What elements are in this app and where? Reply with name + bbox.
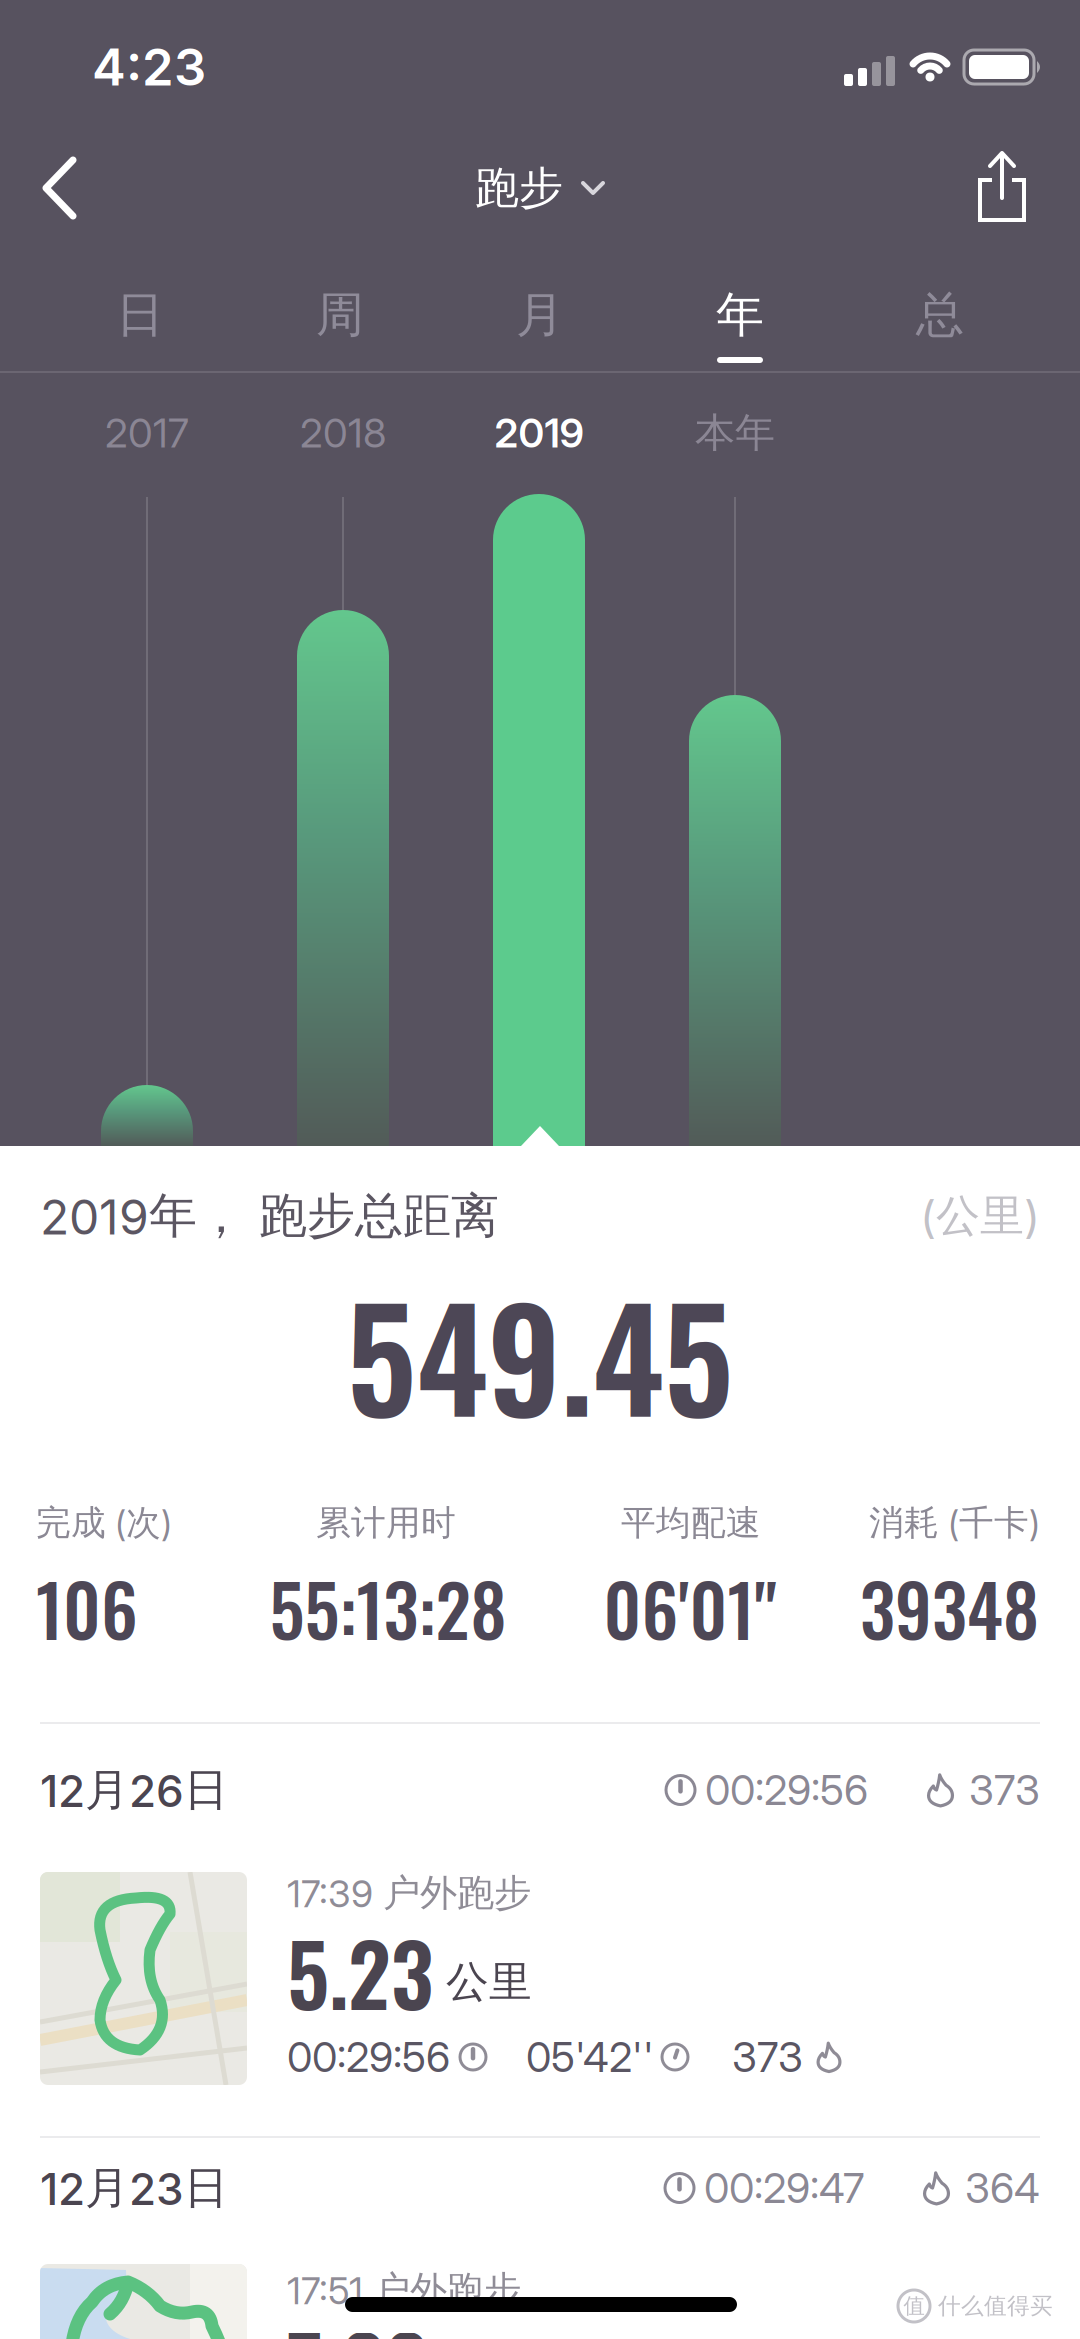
staticText: 什么值得买 [938, 2292, 1053, 2320]
staticText: 373 [732, 2033, 803, 2081]
staticText: 本年 [695, 408, 775, 457]
button[interactable]: Share [972, 140, 1062, 236]
staticText: 总 [916, 285, 964, 344]
staticText: 106 [36, 1556, 138, 1660]
staticText: 7.32 [287, 2302, 428, 2339]
staticText: 12月26日 [40, 1763, 228, 1817]
staticText: 373 [969, 1766, 1040, 1814]
button[interactable]: 总 [840, 285, 1040, 345]
button[interactable]: 周 [240, 285, 440, 345]
staticText: 17:39 户外跑步 [287, 1870, 531, 1916]
staticText: 2017 [105, 409, 189, 457]
staticText: 2018 [300, 409, 386, 457]
button[interactable]: Back [0, 140, 120, 236]
button[interactable]: 月 [440, 285, 640, 345]
staticText: 2019 [494, 409, 583, 457]
staticText: 平均配速 [621, 1502, 761, 1544]
staticText: 公里 [446, 1956, 532, 2008]
staticText: 5.23 [287, 1910, 434, 2034]
staticText: 00:29:47 [704, 2164, 864, 2212]
button[interactable]: 年 [640, 285, 840, 345]
staticText: 跑步 [475, 161, 563, 215]
staticText: 39348 [860, 1556, 1039, 1660]
staticText: 05'42'' [526, 2033, 654, 2081]
button[interactable]: 日 [40, 285, 240, 345]
staticText: 00:29:56 [287, 2033, 450, 2081]
staticText: 364 [965, 2164, 1040, 2212]
staticText: 日 [116, 285, 164, 344]
staticText: 00:29:56 [705, 1766, 868, 1814]
staticText: 累计用时 [316, 1502, 456, 1544]
staticText: 55:13:28 [269, 1556, 506, 1660]
staticText: 4:23 [92, 37, 206, 97]
button[interactable]: 2018 [243, 407, 443, 459]
staticText: 完成 (次) [36, 1502, 172, 1544]
staticText: 06'01" [603, 1556, 776, 1660]
staticText: 周 [316, 285, 364, 344]
button[interactable]: 2019 [439, 407, 639, 459]
staticText: (公里) [920, 1189, 1040, 1243]
button[interactable]: 跑步 [340, 140, 740, 236]
staticText: 549.45 [346, 1251, 733, 1457]
staticText: 月 [516, 285, 564, 344]
staticText: 消耗 (千卡) [869, 1502, 1040, 1544]
staticText: 17:51 户外跑步 [287, 2267, 521, 2313]
button[interactable]: 17:39 户外跑步 [0, 1872, 1080, 2085]
button[interactable]: 本年 [635, 407, 835, 459]
staticText: 2019年， 跑步总距离 [40, 1186, 499, 1245]
staticText: 值 [903, 2293, 924, 2319]
button[interactable]: 17:51 户外跑步 [0, 2264, 1080, 2339]
staticText: 12月23日 [40, 2161, 228, 2215]
button[interactable]: 2017 [47, 407, 247, 459]
staticText: 年 [716, 285, 764, 344]
